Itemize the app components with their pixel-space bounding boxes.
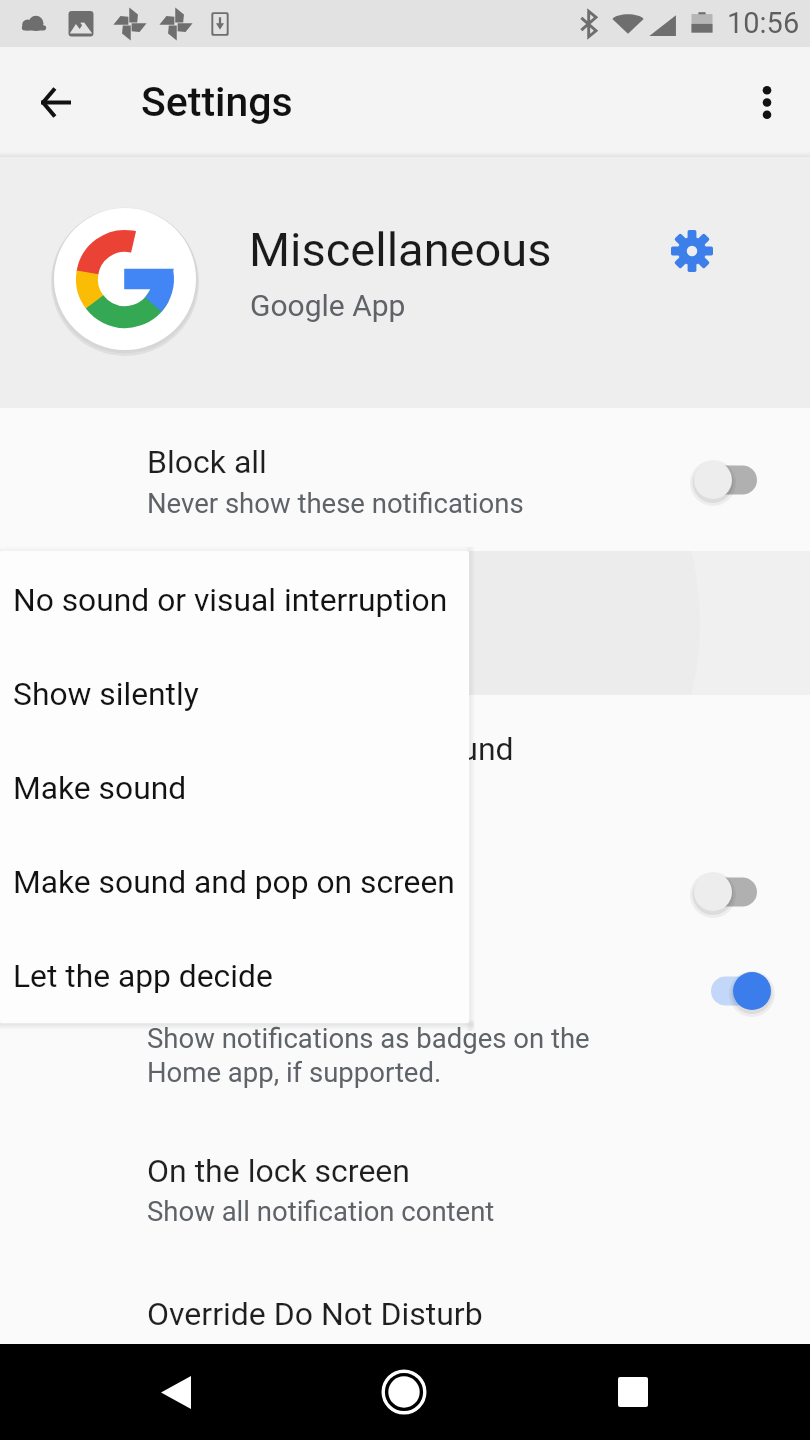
button[interactable]: More options: [731, 66, 803, 138]
staticText: Importance: [147, 591, 311, 629]
button[interactable]: Back: [19, 66, 91, 138]
staticText: Vibrate: [147, 854, 249, 892]
button[interactable]: Block all: [0, 408, 810, 551]
button[interactable]: Importance: [0, 551, 810, 695]
button[interactable]: Toggle off: [693, 450, 777, 510]
staticText: Let the app decide: [13, 957, 273, 994]
button[interactable]: App settings: [666, 225, 718, 277]
button[interactable]: Show notification dot: [0, 960, 810, 1105]
staticText: Make sound and pop on screen: [13, 863, 455, 900]
staticText: Never show these notifications: [147, 487, 524, 519]
button[interactable]: Toggle on: [693, 961, 777, 1021]
button[interactable]: Recent apps: [587, 1346, 679, 1438]
button[interactable]: Home: [358, 1346, 450, 1438]
staticText: Settings: [141, 78, 293, 126]
staticText: Override Do Not Disturb: [147, 1295, 483, 1333]
button[interactable]: Back: [130, 1346, 222, 1438]
staticText: On the lock screen: [147, 1152, 410, 1190]
staticText: Miscellaneous: [249, 222, 552, 277]
staticText: Make sound: [13, 769, 187, 806]
button[interactable]: Default notification sound: [0, 695, 810, 820]
staticText: Show all notification content: [147, 1195, 495, 1227]
button[interactable]: Vibrate: [0, 820, 810, 960]
button[interactable]: Override Do Not Disturb: [0, 1245, 810, 1340]
staticText: 10:56: [727, 6, 800, 40]
staticText: Google App: [250, 288, 406, 323]
staticText: Show silently: [13, 675, 199, 712]
staticText: No sound or visual interruption: [13, 581, 448, 618]
staticText: Show notifications as badges on the Home…: [147, 1022, 590, 1089]
staticText: Block all: [147, 443, 267, 481]
staticText: Default notification sound: [147, 730, 514, 768]
button[interactable]: Toggle off: [693, 862, 777, 922]
staticText: Show notification dot: [147, 974, 449, 1012]
button[interactable]: On the lock screen: [0, 1105, 810, 1245]
staticText: Also vibrate: [147, 895, 292, 927]
